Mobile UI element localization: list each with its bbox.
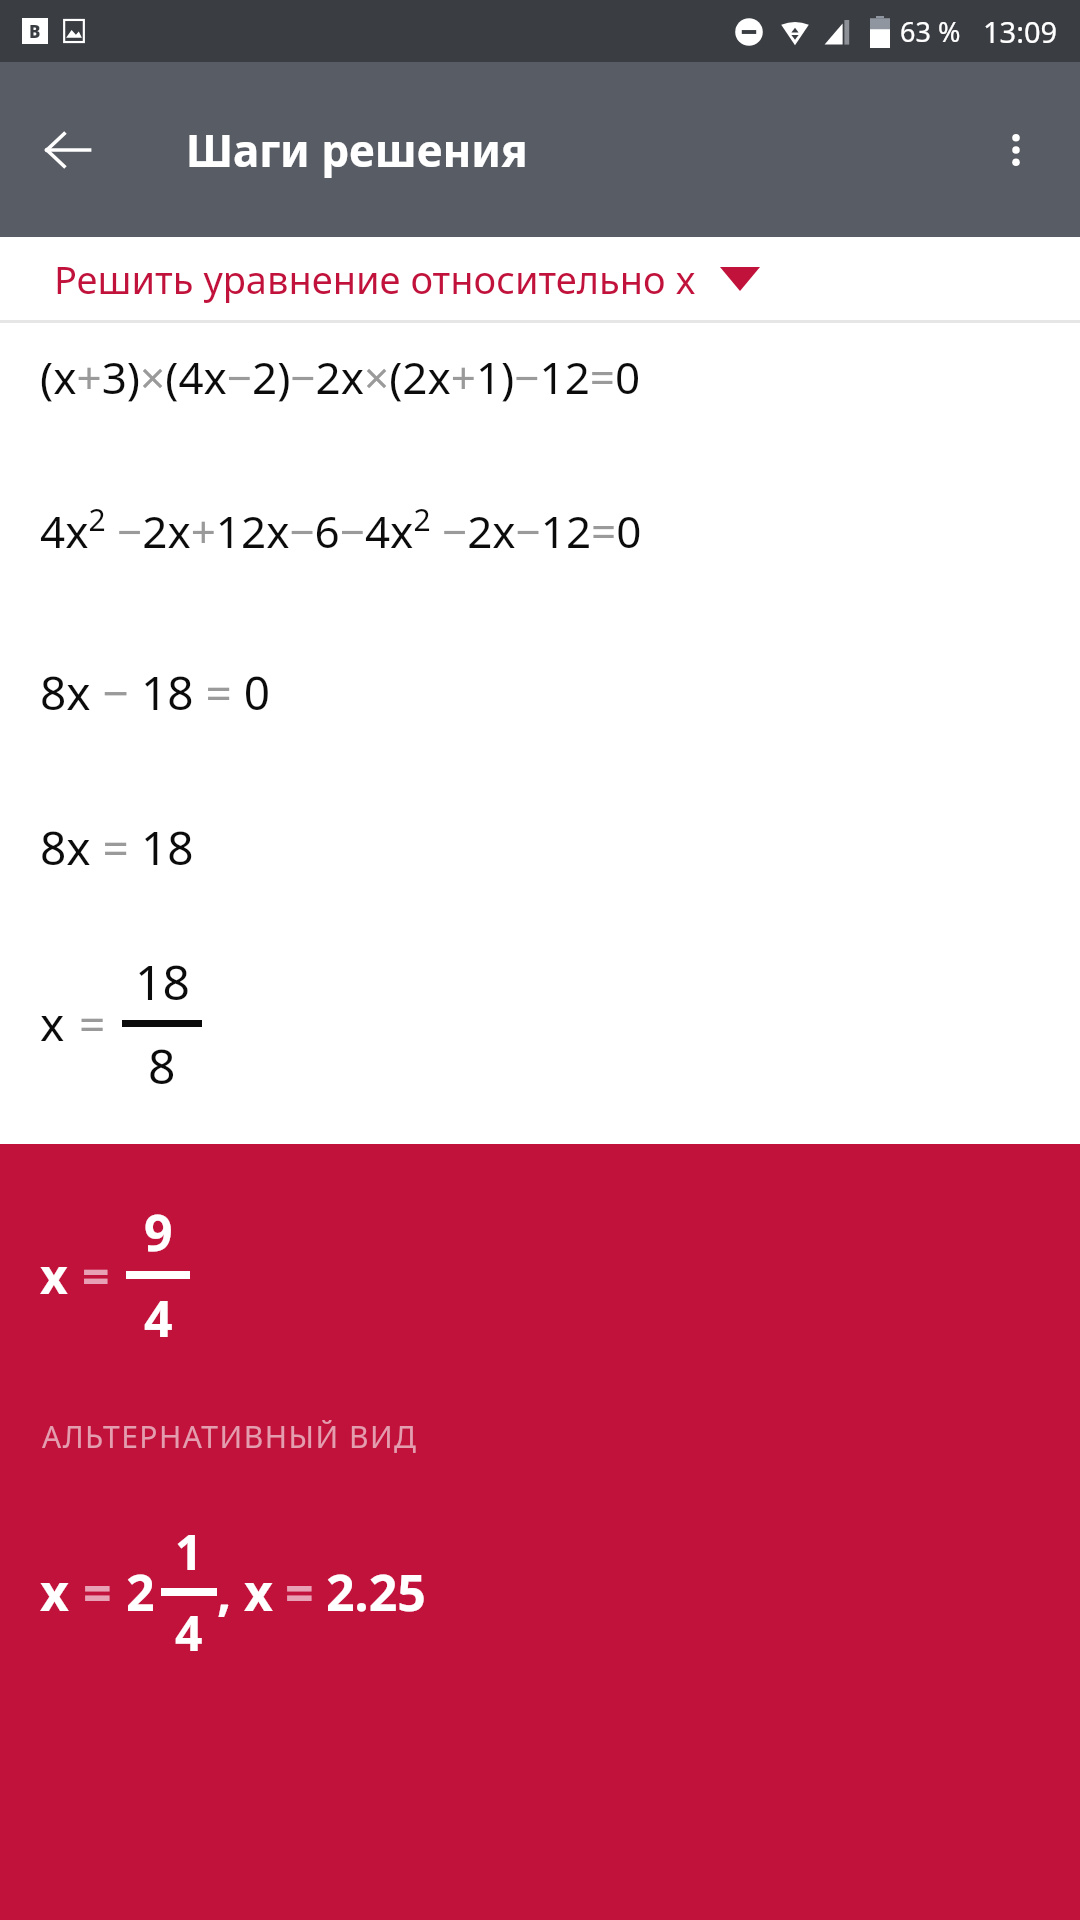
- button[interactable]: x: [0, 1144, 1080, 1920]
- staticText: 4: [175, 1600, 203, 1665]
- staticText: 8: [148, 1033, 176, 1098]
- staticText: x: [40, 1558, 69, 1626]
- staticText: =: [79, 992, 106, 1055]
- staticText: x: [40, 992, 65, 1055]
- button[interactable]: (x+3)×(4x−2)−2x×(2x+1)−12=0: [0, 347, 1080, 407]
- staticText: 2.25: [326, 1558, 426, 1626]
- button[interactable]: 8x = 18: [0, 816, 1080, 879]
- staticText: 8x = 18: [40, 816, 194, 879]
- button[interactable]: 8x − 18 = 0: [0, 661, 1080, 724]
- button[interactable]: x: [40, 949, 1080, 1098]
- staticText: x: [40, 1243, 68, 1308]
- staticText: 18: [135, 949, 190, 1014]
- staticText: (x+3)×(4x−2)−2x×(2x+1)−12=0: [40, 347, 641, 407]
- staticText: Решить уравнение относительно x: [54, 253, 696, 305]
- staticText: ,: [217, 1558, 232, 1626]
- button[interactable]: More options: [974, 108, 1058, 192]
- staticText: =: [285, 1558, 314, 1626]
- staticText: 1: [175, 1519, 203, 1584]
- staticText: АЛЬТЕРНАТИВНЫЙ ВИД: [42, 1416, 418, 1457]
- staticText: x: [244, 1558, 273, 1626]
- staticText: Шаги решения: [186, 120, 528, 180]
- staticText: 9: [144, 1198, 173, 1266]
- staticText: 2: [126, 1558, 155, 1626]
- staticText: 8x − 18 = 0: [40, 661, 271, 724]
- staticText: 63 %: [900, 13, 961, 50]
- staticText: 4: [144, 1284, 173, 1352]
- button[interactable]: Back: [26, 108, 110, 192]
- staticText: =: [83, 1558, 112, 1626]
- button[interactable]: 4x2 −2x+12x−6−4x2 −2x−12=0: [0, 499, 1080, 561]
- staticText: 4x2 −2x+12x−6−4x2 −2x−12=0: [40, 499, 642, 561]
- button[interactable]: Решить уравнение относительно x: [0, 237, 1080, 320]
- staticText: =: [82, 1243, 110, 1308]
- staticText: B: [29, 20, 41, 43]
- staticText: 13:09: [983, 12, 1058, 51]
